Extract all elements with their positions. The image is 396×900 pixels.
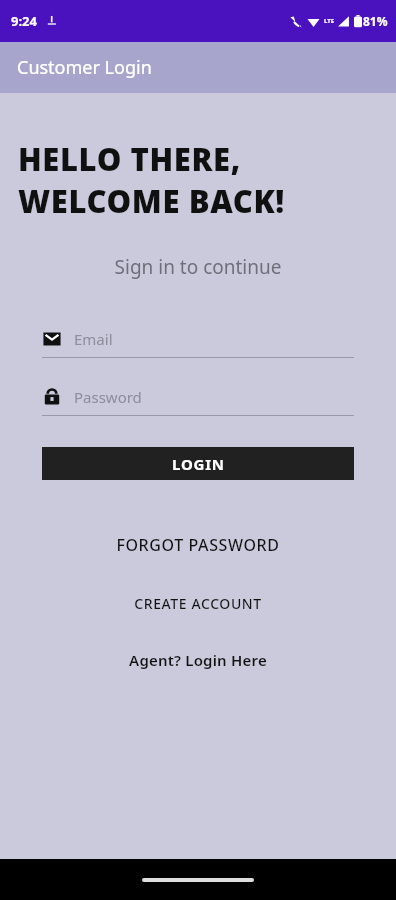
- button[interactable]: Email: [42, 326, 354, 358]
- staticText: Email: [74, 329, 113, 349]
- staticText: Password: [74, 387, 142, 407]
- staticText: FORGOT PASSWORD: [116, 534, 280, 556]
- button[interactable]: CREATE ACCOUNT: [0, 594, 396, 613]
- staticText: HELLO THERE,: [18, 138, 241, 180]
- button[interactable]: LOGIN: [42, 447, 354, 480]
- staticText: Agent? Login Here: [129, 650, 267, 670]
- button[interactable]: FORGOT PASSWORD: [0, 534, 396, 556]
- staticText: Sign in to continue: [0, 254, 396, 280]
- staticText: CREATE ACCOUNT: [134, 594, 262, 613]
- staticText: LTE: [324, 17, 335, 25]
- button[interactable]: Agent? Login Here: [0, 650, 396, 670]
- staticText: 9:24: [11, 12, 37, 30]
- other: Email: [42, 329, 62, 349]
- button[interactable]: Password: [42, 384, 354, 416]
- staticText: WELCOME BACK!: [18, 180, 285, 222]
- staticText: 81%: [363, 13, 388, 29]
- staticText: LOGIN: [172, 454, 225, 474]
- staticText: Customer Login: [17, 55, 152, 80]
- other: Password: [42, 387, 62, 407]
